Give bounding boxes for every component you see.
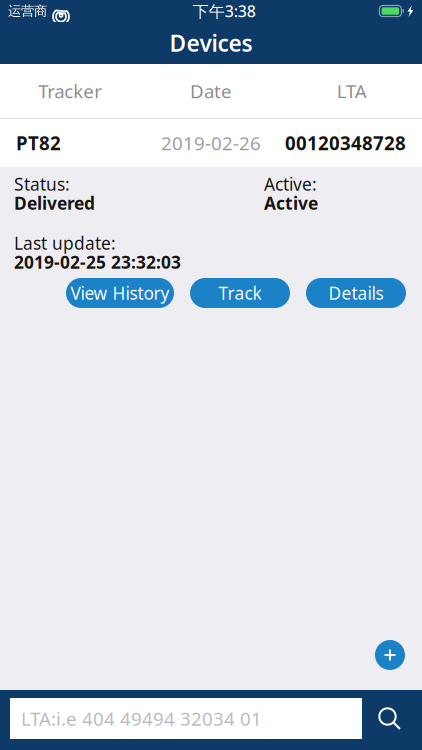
button[interactable]: PT82 <box>0 119 422 167</box>
staticText: Active <box>264 191 318 214</box>
staticText: Status: <box>14 172 70 195</box>
button[interactable]: Add device <box>375 640 405 670</box>
staticText: LTA <box>337 79 367 103</box>
staticText: 下午3:38 <box>193 0 256 22</box>
staticText: Delivered <box>14 191 95 214</box>
staticText: 运营商 <box>8 3 47 19</box>
staticText: Last update: <box>14 231 116 254</box>
staticText: Date <box>190 79 232 103</box>
staticText: Details <box>328 281 383 304</box>
staticText: 2019-02-26 <box>161 131 261 155</box>
staticText: Tracker <box>38 79 102 103</box>
staticText: Devices <box>169 28 252 58</box>
button[interactable]: Details <box>306 278 406 308</box>
staticText: LTA:i.e 404 49494 32034 01 <box>21 706 262 731</box>
staticText: 00120348728 <box>285 131 406 155</box>
staticText: 2019-02-25 23:32:03 <box>14 250 181 273</box>
button[interactable]: Track <box>190 278 290 308</box>
staticText: View History <box>70 281 169 304</box>
staticText: PT82 <box>16 131 61 155</box>
staticText: Track <box>218 281 261 304</box>
staticText: Active: <box>264 172 317 195</box>
button[interactable]: Search <box>378 707 401 730</box>
button[interactable]: View History <box>66 278 174 308</box>
